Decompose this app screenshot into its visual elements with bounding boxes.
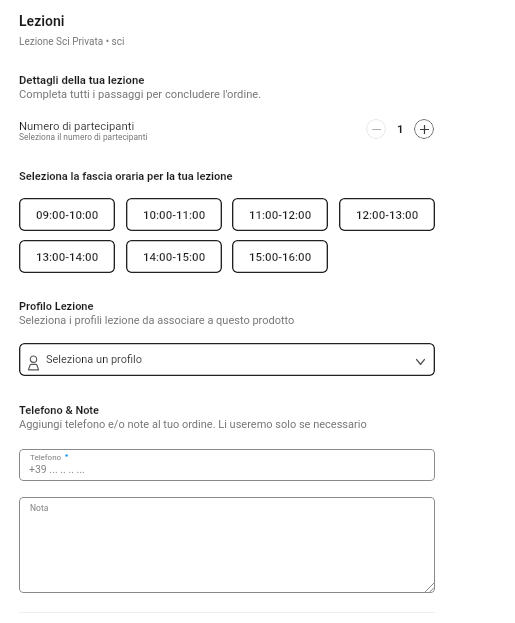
staticText: 13:00-14:00	[36, 250, 99, 263]
staticText: 11:00-12:00	[249, 208, 312, 221]
staticText: Telefono	[30, 453, 62, 462]
button[interactable]: 15:00-16:00	[232, 240, 328, 273]
button[interactable]: Aumenta partecipanti	[414, 119, 434, 139]
button[interactable]: 12:00-13:00	[339, 198, 435, 231]
staticText: 12:00-13:00	[356, 208, 419, 221]
staticText: Profilo Lezione	[19, 300, 94, 313]
staticText: Lezione Sci Privata • sci	[19, 36, 125, 48]
staticText: Seleziona i profili lezione da associare…	[19, 314, 295, 327]
staticText: Numero di partecipanti	[19, 120, 135, 133]
staticText: Seleziona un profilo	[46, 353, 416, 366]
button[interactable]: Telefono	[19, 449, 435, 481]
staticText: Lezioni	[19, 13, 65, 29]
button[interactable]: Seleziona un profilo	[19, 343, 435, 376]
staticText: 09:00-10:00	[36, 208, 99, 221]
staticText: 10:00-11:00	[143, 208, 206, 221]
staticText: Completa tutti i passaggi per concludere…	[19, 88, 262, 101]
button[interactable]: 14:00-15:00	[126, 240, 222, 273]
staticText: 14:00-15:00	[143, 250, 206, 263]
button[interactable]: Nota	[19, 497, 435, 593]
staticText: Aggiungi telefono e/o note al tuo ordine…	[19, 418, 367, 431]
staticText: +39 ... .. .. ...	[29, 463, 85, 475]
staticText: Seleziona la fascia oraria per la tua le…	[19, 170, 233, 183]
staticText: Nota	[30, 503, 49, 513]
button[interactable]: 09:00-10:00	[19, 198, 115, 231]
staticText: Telefono & Note	[19, 404, 100, 417]
button[interactable]: 10:00-11:00	[126, 198, 222, 231]
button[interactable]: Diminuisci partecipanti	[366, 119, 386, 139]
staticText: 15:00-16:00	[249, 250, 312, 263]
staticText: 1	[397, 122, 404, 135]
staticText: Dettagli della tua lezione	[19, 74, 145, 87]
button[interactable]: 11:00-12:00	[232, 198, 328, 231]
button[interactable]: 13:00-14:00	[19, 240, 115, 273]
staticText: Seleziona il numero di partecipanti	[19, 132, 148, 142]
